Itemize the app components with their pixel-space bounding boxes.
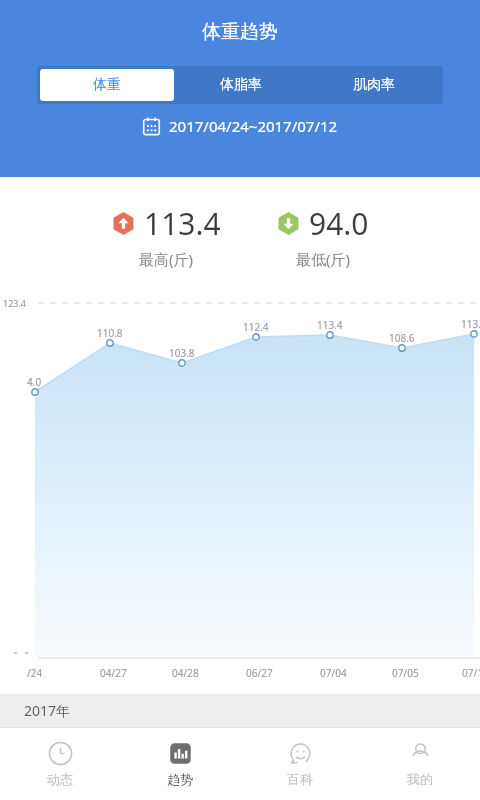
staticText: 108.6 [389, 331, 415, 345]
staticText: 体脂率 [220, 76, 262, 94]
staticText: 最低(斤) [296, 249, 351, 269]
staticText: 最高(斤) [139, 249, 194, 269]
staticText: 113.4 [144, 203, 221, 244]
staticText: 体重 [93, 76, 121, 94]
staticText: /24 [27, 666, 43, 680]
staticText: 123.4 [3, 297, 27, 309]
staticText: 趋势 [167, 771, 193, 787]
button[interactable]: 体脂率 [174, 69, 307, 101]
staticText: 110.8 [97, 326, 123, 340]
staticText: 04/28 [172, 666, 199, 680]
staticText: 2017年 [24, 701, 71, 720]
staticText: 07/12 [462, 666, 480, 680]
staticText: 07/05 [392, 666, 419, 680]
staticText: 4.0 [27, 375, 42, 389]
button[interactable]: 动态 [0, 728, 120, 800]
staticText: 113.2 [461, 317, 480, 331]
staticText: 体重趋势 [202, 20, 278, 44]
staticText: 肌肉率 [353, 76, 395, 94]
button[interactable]: 体重 [40, 69, 174, 101]
staticText: 112.4 [243, 320, 269, 334]
staticText: 百科 [287, 771, 313, 787]
button[interactable]: 肌肉率 [307, 69, 440, 101]
other: Date range [142, 117, 161, 136]
staticText: 我的 [407, 771, 433, 787]
button[interactable]: 趋势 [120, 728, 240, 800]
button[interactable]: Date range [132, 113, 348, 139]
staticText: 113.4 [317, 318, 343, 332]
staticText: 动态 [47, 771, 73, 787]
staticText: 94.0 [309, 203, 369, 244]
staticText: 103.8 [169, 346, 195, 360]
staticText: 04/27 [100, 666, 127, 680]
staticText: 06/27 [246, 666, 273, 680]
button[interactable]: 我的 [360, 728, 480, 800]
staticText: 2017/04/24~2017/07/12 [169, 116, 338, 136]
staticText: 07/04 [320, 666, 347, 680]
button[interactable]: 百科 [240, 728, 360, 800]
